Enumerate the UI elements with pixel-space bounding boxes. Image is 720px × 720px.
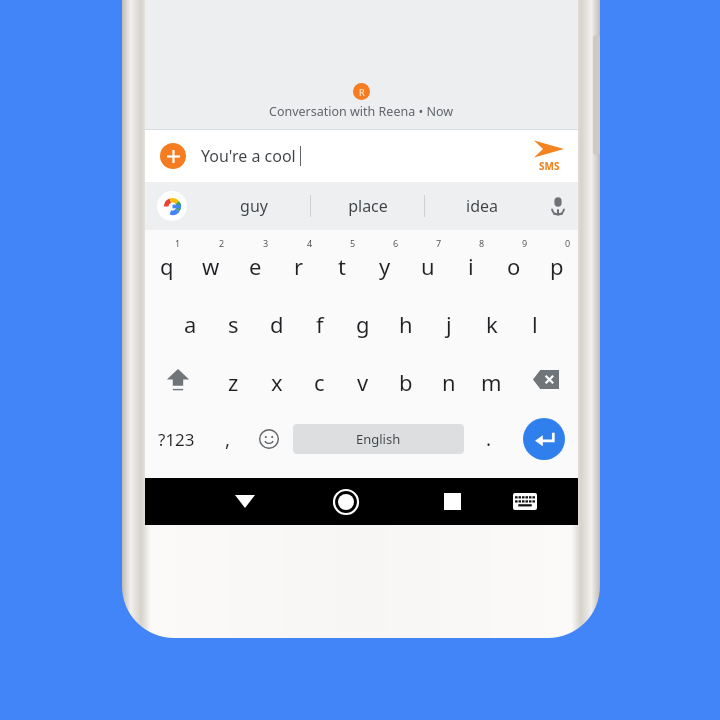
staticText: h bbox=[399, 309, 413, 339]
button[interactable]: b bbox=[384, 350, 427, 408]
button[interactable]: z bbox=[211, 350, 255, 408]
button[interactable]: x bbox=[255, 350, 298, 408]
button[interactable]: k bbox=[470, 292, 513, 350]
button[interactable]: t bbox=[320, 234, 363, 292]
staticText: j bbox=[446, 309, 452, 339]
staticText: k bbox=[486, 309, 498, 339]
staticText: t bbox=[338, 251, 346, 281]
staticText: ?123 bbox=[158, 428, 195, 451]
staticText: 2 bbox=[219, 237, 225, 249]
staticText: 4 bbox=[307, 237, 313, 249]
staticText: You're a cool bbox=[201, 145, 296, 167]
button[interactable]: c bbox=[298, 350, 341, 408]
button[interactable]: d bbox=[255, 292, 298, 350]
button[interactable]: j bbox=[427, 292, 470, 350]
staticText: y bbox=[379, 251, 391, 281]
staticText: r bbox=[294, 251, 304, 281]
staticText: d bbox=[270, 309, 284, 339]
button[interactable]: . bbox=[468, 408, 509, 470]
staticText: s bbox=[228, 309, 239, 339]
button[interactable]: l bbox=[513, 292, 556, 350]
staticText: , bbox=[225, 426, 231, 452]
button[interactable]: English bbox=[293, 424, 464, 454]
button[interactable]: i bbox=[449, 234, 492, 292]
staticText: guy bbox=[240, 195, 268, 217]
staticText: w bbox=[202, 251, 220, 281]
staticText: e bbox=[249, 251, 262, 281]
button[interactable]: g bbox=[341, 292, 384, 350]
button[interactable]: Emoji bbox=[248, 408, 289, 470]
button[interactable]: y bbox=[363, 234, 406, 292]
staticText: idea bbox=[466, 195, 498, 217]
button[interactable]: p bbox=[535, 234, 578, 292]
staticText: o bbox=[507, 251, 521, 281]
button[interactable]: place bbox=[311, 182, 424, 230]
button[interactable]: ?123 bbox=[145, 408, 207, 470]
button[interactable]: q bbox=[145, 234, 189, 292]
staticText: x bbox=[271, 367, 283, 397]
staticText: English bbox=[356, 430, 401, 448]
button[interactable]: f bbox=[298, 292, 341, 350]
staticText: 6 bbox=[393, 237, 399, 249]
staticText: place bbox=[348, 195, 388, 217]
button[interactable]: Enter bbox=[509, 408, 578, 470]
button[interactable]: idea bbox=[425, 182, 538, 230]
staticText: 8 bbox=[479, 237, 485, 249]
staticText: SMS bbox=[539, 159, 560, 173]
staticText: v bbox=[357, 367, 369, 397]
button[interactable]: Back bbox=[213, 478, 276, 525]
button[interactable]: s bbox=[212, 292, 255, 350]
button[interactable]: Add attachment bbox=[160, 143, 186, 169]
button[interactable]: u bbox=[406, 234, 449, 292]
button[interactable]: h bbox=[384, 292, 427, 350]
button[interactable]: Send SMS bbox=[520, 139, 578, 173]
button[interactable]: r bbox=[277, 234, 320, 292]
staticText: q bbox=[160, 251, 174, 281]
staticText: R bbox=[359, 86, 365, 98]
staticText: u bbox=[421, 251, 435, 281]
button[interactable]: Voice input bbox=[538, 182, 578, 230]
staticText: l bbox=[532, 309, 538, 339]
staticText: 3 bbox=[263, 237, 269, 249]
staticText: f bbox=[316, 309, 324, 339]
staticText: i bbox=[468, 251, 474, 281]
staticText: c bbox=[314, 367, 325, 397]
button[interactable]: m bbox=[470, 350, 513, 408]
button[interactable]: Home bbox=[314, 478, 377, 525]
staticText: 9 bbox=[522, 237, 528, 249]
staticText: 0 bbox=[565, 237, 571, 249]
button[interactable]: Google bbox=[157, 191, 187, 221]
button[interactable]: , bbox=[207, 408, 248, 470]
button[interactable]: w bbox=[189, 234, 233, 292]
staticText: n bbox=[442, 367, 456, 397]
staticText: m bbox=[481, 367, 502, 397]
staticText: p bbox=[550, 251, 564, 281]
staticText: z bbox=[228, 367, 239, 397]
staticText: 7 bbox=[436, 237, 442, 249]
button[interactable]: v bbox=[341, 350, 384, 408]
staticText: a bbox=[184, 309, 197, 339]
button[interactable]: e bbox=[233, 234, 277, 292]
button[interactable]: Backspace bbox=[513, 350, 578, 408]
staticText: 1 bbox=[175, 237, 181, 249]
button[interactable]: o bbox=[492, 234, 535, 292]
staticText: b bbox=[399, 367, 413, 397]
staticText: 5 bbox=[350, 237, 356, 249]
staticText: g bbox=[356, 309, 370, 339]
staticText: Conversation with Reena • Now bbox=[269, 103, 454, 120]
button[interactable]: You're a cool bbox=[201, 145, 520, 167]
staticText: . bbox=[486, 426, 492, 452]
button[interactable]: Shift bbox=[145, 350, 211, 408]
button[interactable]: Recent apps bbox=[421, 478, 484, 525]
button[interactable]: n bbox=[427, 350, 470, 408]
button[interactable]: a bbox=[168, 292, 212, 350]
button[interactable]: guy bbox=[197, 182, 310, 230]
button[interactable]: Switch keyboard bbox=[493, 478, 556, 525]
